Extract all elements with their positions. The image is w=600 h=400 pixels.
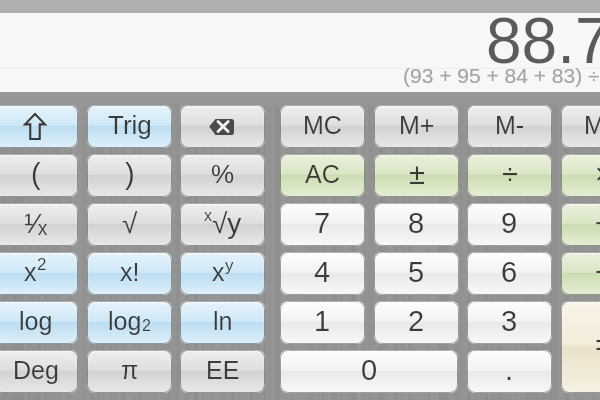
staticText: EE [206, 356, 240, 384]
staticText: 7 [314, 207, 331, 239]
button[interactable]: ¹⁄ₓ [0, 203, 78, 246]
button[interactable]: ( [0, 154, 78, 197]
staticText: 6 [501, 256, 518, 288]
staticText: % [211, 159, 235, 188]
staticText: 2 [408, 305, 425, 337]
staticText: ) [125, 158, 135, 190]
button[interactable]: 6 [467, 252, 552, 295]
button[interactable]: 2 [374, 301, 459, 344]
staticText: log [19, 307, 53, 335]
staticText: Trig [108, 110, 152, 139]
staticText: 4 [314, 256, 331, 288]
button[interactable]: √ [87, 203, 172, 246]
staticText: 0 [361, 354, 378, 386]
button[interactable]: Trig [87, 105, 172, 148]
button[interactable]: Delete [180, 105, 265, 148]
staticText: M- [495, 111, 525, 139]
button[interactable]: EE [180, 350, 265, 393]
staticText: ( [31, 158, 41, 190]
staticText: MC [303, 111, 342, 139]
button[interactable]: M+ [374, 105, 459, 148]
staticText: 5 [408, 256, 425, 288]
button[interactable]: x [180, 203, 265, 246]
staticText: × [595, 158, 600, 190]
button[interactable]: M- [467, 105, 552, 148]
button[interactable]: x [180, 252, 265, 295]
staticText: = [595, 329, 600, 361]
staticText: + [595, 256, 600, 288]
button[interactable]: Deg [0, 350, 78, 393]
button[interactable]: 7 [280, 203, 365, 246]
staticText: 3 [501, 305, 518, 337]
staticText: √y [212, 208, 242, 239]
staticText: ln [213, 307, 233, 335]
button[interactable]: 0 [280, 350, 458, 393]
button[interactable]: 1 [280, 301, 365, 344]
button[interactable]: π [87, 350, 172, 393]
button[interactable]: 3 [467, 301, 552, 344]
staticText: ÷ [502, 158, 518, 190]
button[interactable]: % [180, 154, 265, 197]
button[interactable]: × [561, 154, 600, 197]
staticText: . [505, 354, 514, 386]
staticText: π [121, 356, 139, 384]
button[interactable]: MC [280, 105, 365, 148]
staticText: (93 + 95 + 84 + 83) ÷ [403, 64, 600, 87]
staticText: x! [120, 258, 140, 286]
button[interactable]: AC [280, 154, 365, 197]
staticText: y [225, 256, 234, 275]
staticText: ¹⁄ₓ [24, 208, 48, 239]
staticText: AC [305, 160, 340, 188]
staticText: M+ [399, 111, 435, 139]
button[interactable]: x [0, 252, 78, 295]
button[interactable]: Shift [0, 105, 78, 148]
button[interactable]: log [0, 301, 78, 344]
staticText: Deg [13, 356, 59, 384]
button[interactable]: log [87, 301, 172, 344]
button[interactable]: 8 [374, 203, 459, 246]
staticText: MR [584, 111, 600, 139]
button[interactable]: + [561, 252, 600, 295]
staticText: 1 [314, 305, 331, 337]
button[interactable]: 9 [467, 203, 552, 246]
staticText: x [204, 207, 212, 225]
staticText: x [212, 258, 225, 286]
button[interactable]: 4 [280, 252, 365, 295]
button[interactable]: ÷ [467, 154, 552, 197]
button[interactable]: 5 [374, 252, 459, 295]
button[interactable]: . [467, 350, 552, 393]
staticText: 88.7 [486, 5, 600, 77]
staticText: log [108, 307, 142, 335]
button[interactable]: MR [561, 105, 600, 148]
staticText: 9 [501, 207, 518, 239]
staticText: ± [409, 158, 425, 190]
button[interactable]: ln [180, 301, 265, 344]
staticText: 2 [142, 317, 151, 335]
button[interactable]: x! [87, 252, 172, 295]
button[interactable]: ) [87, 154, 172, 197]
button[interactable]: ± [374, 154, 459, 197]
staticText: 8 [408, 207, 425, 239]
staticText: − [595, 207, 600, 239]
button[interactable]: − [561, 203, 600, 246]
staticText: x [24, 258, 37, 286]
staticText: √ [122, 208, 138, 239]
button[interactable]: = [561, 301, 600, 393]
staticText: 2 [37, 255, 47, 274]
